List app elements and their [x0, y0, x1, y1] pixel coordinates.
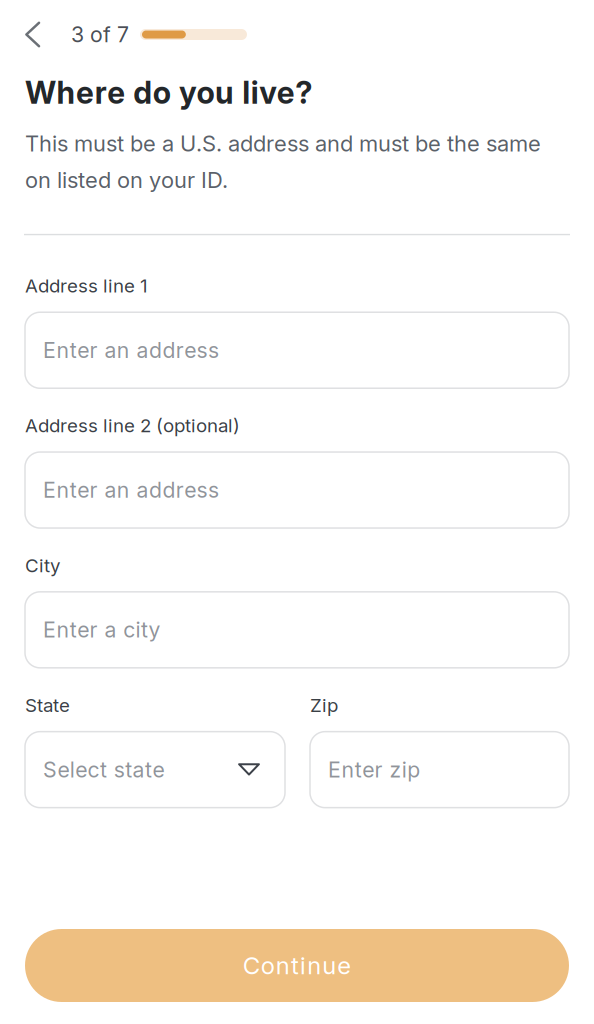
button[interactable]: Enter an address	[25, 312, 569, 388]
staticText: Where do you live?	[25, 74, 312, 111]
button[interactable]: Select state	[25, 732, 285, 808]
staticText: Continue	[243, 951, 351, 980]
staticText: Address line 1	[25, 274, 148, 297]
button[interactable]: Enter zip	[310, 732, 569, 808]
staticText: Enter an address	[43, 337, 219, 363]
staticText: Enter a city	[43, 617, 160, 643]
staticText: State	[25, 694, 70, 716]
button[interactable]: Continue	[25, 929, 569, 1002]
button[interactable]: Enter an address	[25, 452, 569, 528]
button[interactable]: Back	[25, 21, 40, 48]
staticText: Zip	[310, 694, 338, 716]
button[interactable]: Enter a city	[25, 592, 569, 668]
staticText: Select state	[43, 757, 164, 782]
staticText: Enter an address	[43, 477, 219, 503]
staticText: Enter zip	[328, 757, 420, 782]
staticText: 3 of 7	[71, 22, 129, 47]
staticText: This must be a U.S. address and must be …	[25, 130, 541, 193]
staticText: Address line 2 (optional)	[25, 414, 240, 437]
staticText: City	[25, 554, 60, 577]
